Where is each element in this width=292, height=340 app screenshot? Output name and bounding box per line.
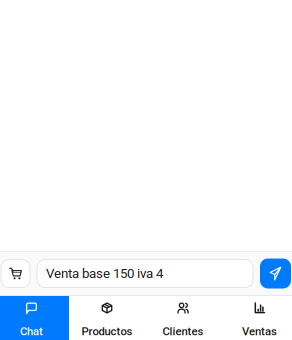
- button[interactable]: Carrito: [1, 259, 30, 287]
- button[interactable]: Clientes: [145, 296, 221, 340]
- button[interactable]: Enviar: [260, 258, 291, 288]
- button[interactable]: Ventas: [221, 296, 292, 340]
- staticText: Venta base 150 iva 4: [46, 266, 163, 281]
- button[interactable]: Productos: [69, 296, 145, 340]
- button[interactable]: Chat: [0, 296, 69, 340]
- staticText: Clientes: [162, 325, 203, 338]
- staticText: Productos: [81, 325, 132, 338]
- staticText: Chat: [20, 325, 43, 338]
- staticText: Ventas: [242, 325, 277, 338]
